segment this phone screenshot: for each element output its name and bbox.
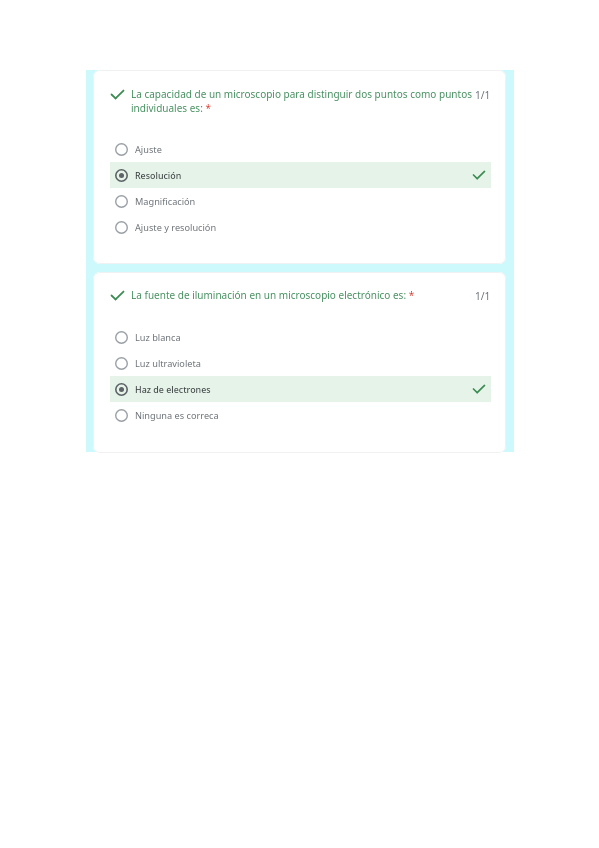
button[interactable]: Luz blanca [93,324,506,350]
other: Answered correctly [111,90,124,99]
staticText: Luz blanca [135,331,181,344]
staticText: 1/1 [475,289,491,303]
staticText: 1/1 [475,88,491,102]
button[interactable]: Ajuste [93,136,506,162]
other: Correct answer [473,385,485,393]
button[interactable]: Ajuste y resolución [93,214,506,240]
staticText: La capacidad de un microscopio para dist… [131,87,472,115]
staticText: La fuente de iluminación en un microscop… [131,288,472,302]
button[interactable]: Ninguna es correca [93,402,506,428]
staticText: Haz de electrones [135,383,211,395]
staticText: Magnificación [135,195,196,208]
button[interactable]: Magnificación [93,188,506,214]
button[interactable]: Haz de electrones [93,376,506,402]
staticText: Resolución [135,169,182,181]
button[interactable]: Luz ultravioleta [93,350,506,376]
other: Correct answer [473,171,485,179]
staticText: Luz ultravioleta [135,357,201,370]
staticText: Ajuste y resolución [135,221,217,234]
staticText: Ninguna es correca [135,409,219,422]
other: Answered correctly [111,291,124,300]
staticText: Ajuste [135,143,162,156]
button[interactable]: Resolución [93,162,506,188]
